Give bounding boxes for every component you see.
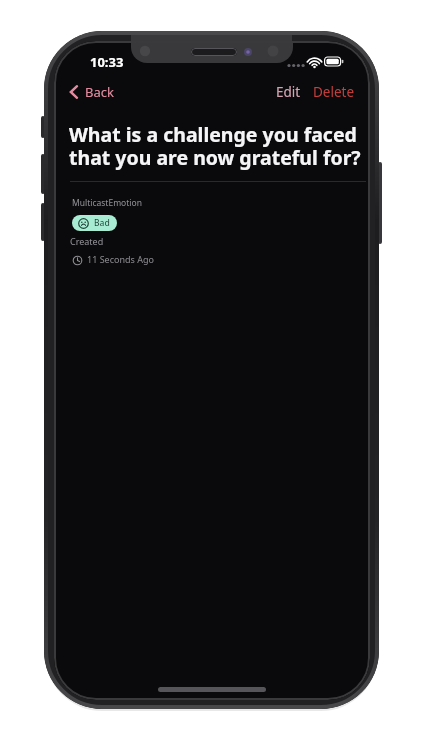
staticText: MulticastEmotion: [72, 197, 142, 209]
button[interactable]: Bad: [72, 215, 117, 231]
staticText: Delete: [313, 83, 355, 101]
staticText: What is a challenge you faced that you a…: [69, 121, 361, 170]
staticText: Edit: [276, 83, 301, 101]
staticText: Back: [85, 83, 114, 101]
staticText: Created: [70, 235, 104, 247]
staticText: 11 Seconds Ago: [87, 253, 154, 265]
button[interactable]: Back: [66, 83, 118, 103]
staticText: 10:33: [90, 53, 124, 71]
staticText: Bad: [94, 217, 110, 229]
button[interactable]: Edit: [272, 83, 306, 103]
button[interactable]: Delete: [309, 83, 357, 103]
